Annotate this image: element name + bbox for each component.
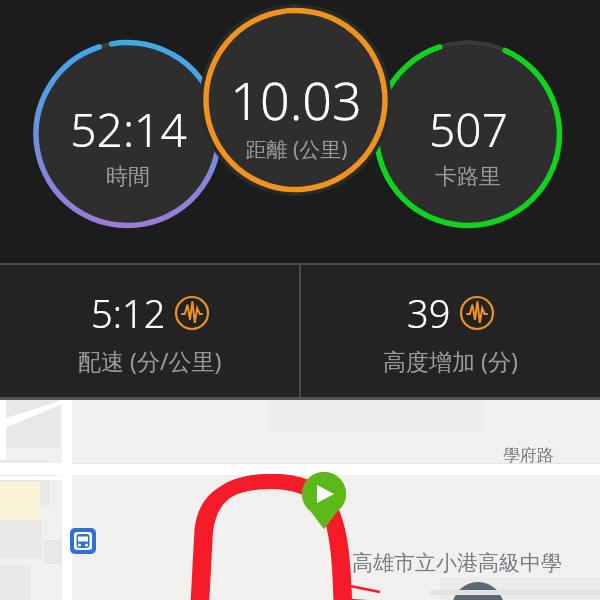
button[interactable]: 39 [301,265,600,397]
staticText: 39 [407,287,451,339]
staticText: 5:12 [91,287,166,339]
button[interactable]: Route map [0,400,600,600]
staticText: 507 [429,98,508,161]
other: Heart rate based metric [459,295,495,331]
staticText: 高雄市立小港高級中學 [352,550,562,576]
staticText: 52:14 [70,98,187,161]
staticText: 時間 [106,163,150,191]
other: Heart rate based metric [174,295,210,331]
staticText: 配速 (分/公里) [78,345,222,376]
staticText: 10.03 [230,64,362,135]
button[interactable]: 5:12 [0,265,299,397]
staticText: 卡路里 [435,163,501,191]
staticText: 距離 (公里) [245,135,348,164]
staticText: 高度增加 (分) [383,345,518,376]
button[interactable]: 52:14 [0,0,600,263]
staticText: 學府路 [503,445,554,466]
